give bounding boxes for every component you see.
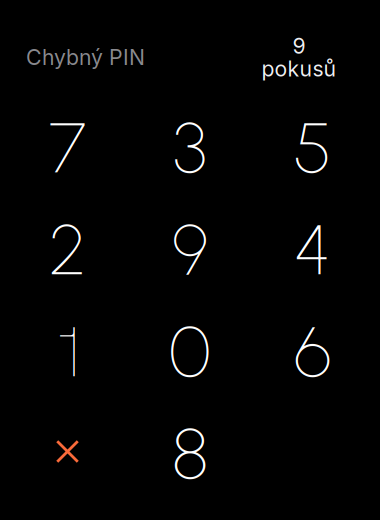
button[interactable]: 1	[6, 300, 129, 402]
staticText: 0	[169, 309, 211, 394]
staticText: 6	[294, 309, 331, 394]
staticText: 3	[173, 105, 207, 190]
button[interactable]: Smazat	[6, 402, 129, 504]
staticText: 1	[50, 305, 90, 398]
button[interactable]: 7	[6, 96, 129, 198]
staticText: 7	[49, 105, 86, 190]
button[interactable]: 3	[129, 96, 251, 198]
button[interactable]: 5	[251, 96, 374, 198]
staticText: Chybný PIN	[26, 44, 145, 70]
staticText: 5	[293, 105, 331, 190]
staticText: 2	[49, 207, 86, 292]
button[interactable]: 6	[251, 300, 374, 402]
button[interactable]: 9	[129, 198, 251, 300]
button[interactable]: 0	[129, 300, 251, 402]
staticText: pokusů	[261, 56, 336, 82]
button[interactable]: 8	[129, 402, 251, 504]
staticText: 8	[172, 411, 208, 496]
button[interactable]: 2	[6, 198, 129, 300]
staticText: 4	[294, 207, 331, 292]
button[interactable]: 4	[251, 198, 374, 300]
staticText: 9	[292, 33, 305, 59]
staticText: 9	[172, 207, 208, 292]
